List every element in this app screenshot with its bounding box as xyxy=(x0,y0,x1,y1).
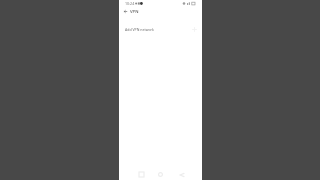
button[interactable]: Back xyxy=(177,170,186,179)
staticText: VPN xyxy=(130,9,139,15)
button[interactable]: Home xyxy=(156,170,165,179)
staticText: Add VPN network xyxy=(125,27,154,32)
button[interactable]: Add VPN network xyxy=(119,24,202,34)
button[interactable]: Back xyxy=(122,8,129,15)
button[interactable]: Recents xyxy=(137,170,146,179)
staticText: 10:24 xyxy=(125,1,135,6)
